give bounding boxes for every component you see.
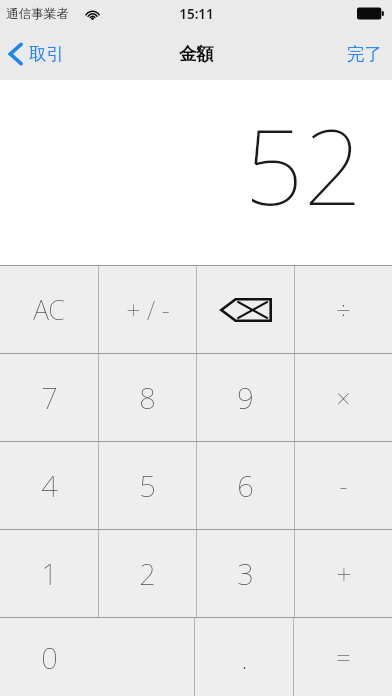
button[interactable]: 4 bbox=[0, 442, 98, 529]
button[interactable]: 取引 bbox=[0, 27, 74, 80]
staticText: 8 bbox=[139, 378, 156, 417]
staticText: 5 bbox=[139, 466, 156, 505]
staticText: + / - bbox=[126, 293, 170, 327]
staticText: 通信事業者 bbox=[6, 6, 69, 22]
button[interactable]: 完了 bbox=[337, 27, 392, 80]
staticText: ÷ bbox=[336, 292, 351, 327]
staticText: AC bbox=[33, 291, 65, 328]
button[interactable]: ÷ bbox=[295, 266, 392, 353]
button[interactable]: 2 bbox=[99, 530, 196, 617]
staticText: × bbox=[336, 381, 351, 415]
button[interactable]: Backspace bbox=[197, 266, 294, 353]
staticText: 1 bbox=[41, 554, 58, 593]
staticText: = bbox=[336, 640, 351, 674]
button[interactable]: 1 bbox=[0, 530, 98, 617]
button[interactable]: 8 bbox=[99, 354, 196, 441]
button[interactable]: 9 bbox=[197, 354, 294, 441]
staticText: 金額 bbox=[179, 43, 214, 65]
staticText: 9 bbox=[237, 378, 254, 417]
button[interactable]: + / - bbox=[99, 266, 196, 353]
staticText: 4 bbox=[41, 466, 58, 505]
button[interactable]: 0 bbox=[0, 618, 194, 696]
button[interactable]: 5 bbox=[99, 442, 196, 529]
staticText: 3 bbox=[237, 554, 254, 593]
button[interactable]: = bbox=[294, 618, 392, 696]
staticText: 6 bbox=[237, 466, 254, 505]
staticText: 完了 bbox=[347, 43, 382, 65]
button[interactable]: + bbox=[295, 530, 392, 617]
staticText: 2 bbox=[139, 554, 156, 593]
staticText: 52 bbox=[244, 94, 363, 236]
button[interactable]: 6 bbox=[197, 442, 294, 529]
staticText: 0 bbox=[41, 638, 58, 677]
staticText: + bbox=[336, 555, 352, 592]
staticText: 7 bbox=[41, 378, 58, 417]
staticText: . bbox=[241, 638, 248, 677]
staticText: 15:11 bbox=[179, 5, 214, 23]
staticText: - bbox=[339, 469, 348, 503]
button[interactable]: AC bbox=[0, 266, 98, 353]
button[interactable]: 3 bbox=[197, 530, 294, 617]
button[interactable]: × bbox=[295, 354, 392, 441]
staticText: 取引 bbox=[29, 43, 64, 65]
button[interactable]: 7 bbox=[0, 354, 98, 441]
